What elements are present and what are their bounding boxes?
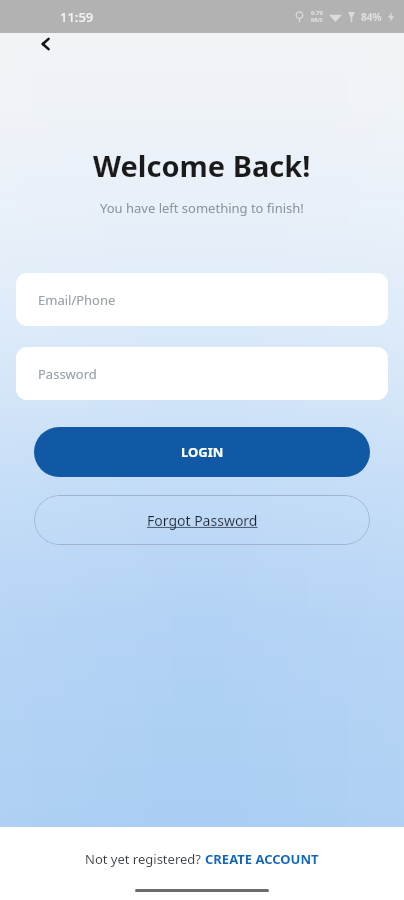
staticText: Email/Phone (38, 291, 116, 309)
staticText: 84% (361, 10, 382, 24)
staticText: KB/S (311, 17, 323, 24)
staticText: LOGIN (181, 443, 224, 461)
button[interactable]: LOGIN (34, 427, 370, 477)
button[interactable]: Back (28, 26, 64, 62)
button[interactable]: Not yet registered? (85, 850, 319, 868)
button[interactable]: Password (16, 347, 388, 400)
staticText: Not yet registered? (85, 850, 205, 868)
staticText: Welcome Back! (93, 146, 311, 185)
staticText: CREATE ACCOUNT (205, 850, 319, 868)
staticText: You have left something to finish! (100, 199, 304, 217)
button[interactable]: Email/Phone (16, 273, 388, 326)
staticText: 11:59 (60, 8, 94, 26)
staticText: Password (38, 365, 97, 383)
staticText: 0.79 (311, 9, 323, 17)
staticText: Forgot Password (147, 511, 258, 530)
button[interactable]: Forgot Password (34, 495, 370, 545)
